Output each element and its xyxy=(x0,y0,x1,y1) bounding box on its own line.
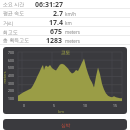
staticText: km xyxy=(65,20,72,26)
staticText: 최고도 xyxy=(3,29,18,35)
staticText: 1283 xyxy=(46,36,63,45)
staticText: meters xyxy=(3,71,6,83)
button[interactable]: Heart rate chart xyxy=(3,119,127,130)
staticText: 고도 xyxy=(61,50,71,56)
button[interactable]: Elevation chart xyxy=(3,47,127,114)
button[interactable]: 거리 xyxy=(0,18,130,27)
staticText: 600 xyxy=(8,58,14,63)
staticText: 400 xyxy=(8,73,14,78)
staticText: 0 xyxy=(23,103,25,108)
staticText: meters xyxy=(65,38,80,44)
button[interactable]: 평균 속도 xyxy=(0,9,130,18)
staticText: 심박 xyxy=(61,123,71,129)
staticText: 거리 xyxy=(3,20,13,26)
staticText: 소요 시간 xyxy=(3,1,25,8)
staticText: 700 xyxy=(8,50,14,55)
staticText: 17.4 xyxy=(49,18,63,27)
staticText: 675 xyxy=(50,27,63,36)
staticText: 10 xyxy=(83,103,87,108)
staticText: 100 xyxy=(8,96,14,101)
staticText: 500 xyxy=(8,65,14,70)
staticText: 5 xyxy=(53,103,55,108)
staticText: meters xyxy=(65,29,80,35)
button[interactable]: 최고도 xyxy=(0,27,130,36)
staticText: 06:31:27 xyxy=(35,0,63,9)
button[interactable]: 소요 시간 xyxy=(0,0,130,9)
staticText: 총 획득고도 xyxy=(3,37,30,44)
staticText: 200 xyxy=(8,88,14,93)
staticText: km xyxy=(58,109,64,114)
button[interactable]: 총 획득고도 xyxy=(0,36,130,45)
staticText: 300 xyxy=(8,81,14,86)
staticText: 평균 속도 xyxy=(3,10,25,17)
staticText: 2.7 xyxy=(53,9,63,18)
staticText: km/h xyxy=(65,11,77,17)
staticText: 15 xyxy=(113,103,117,108)
